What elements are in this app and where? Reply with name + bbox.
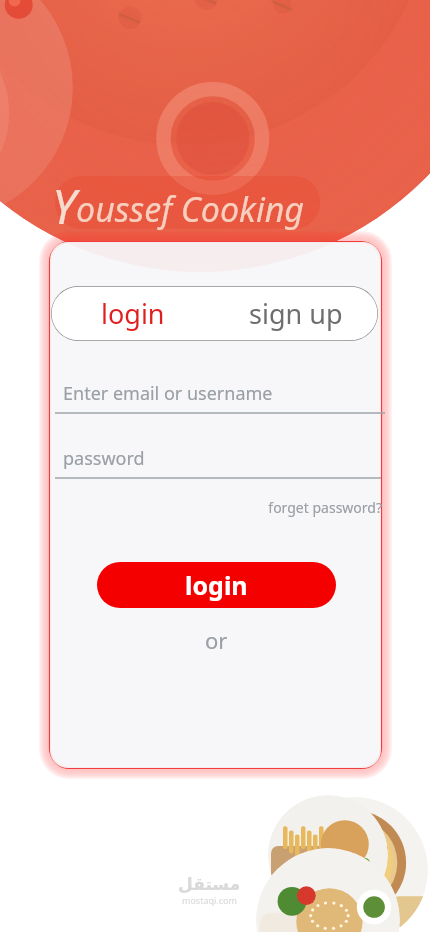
staticText: or <box>205 625 228 655</box>
button[interactable]: Enter email or username <box>55 377 385 415</box>
staticText: sign up <box>249 295 343 332</box>
button[interactable]: password <box>55 442 381 480</box>
button[interactable]: login <box>51 286 214 341</box>
staticText: forget password? <box>268 498 382 517</box>
staticText: Y <box>52 174 76 238</box>
button[interactable]: login <box>97 562 336 608</box>
staticText: login <box>185 568 248 602</box>
staticText: login <box>101 295 165 332</box>
staticText: مستقل <box>178 874 241 894</box>
staticText: Enter email or username <box>63 381 273 406</box>
staticText: mostaqi.com <box>182 894 237 906</box>
staticText: password <box>63 446 145 471</box>
button[interactable]: forget password? <box>255 496 382 518</box>
staticText: oussef Cooking <box>76 186 305 232</box>
button[interactable]: sign up <box>214 286 378 341</box>
